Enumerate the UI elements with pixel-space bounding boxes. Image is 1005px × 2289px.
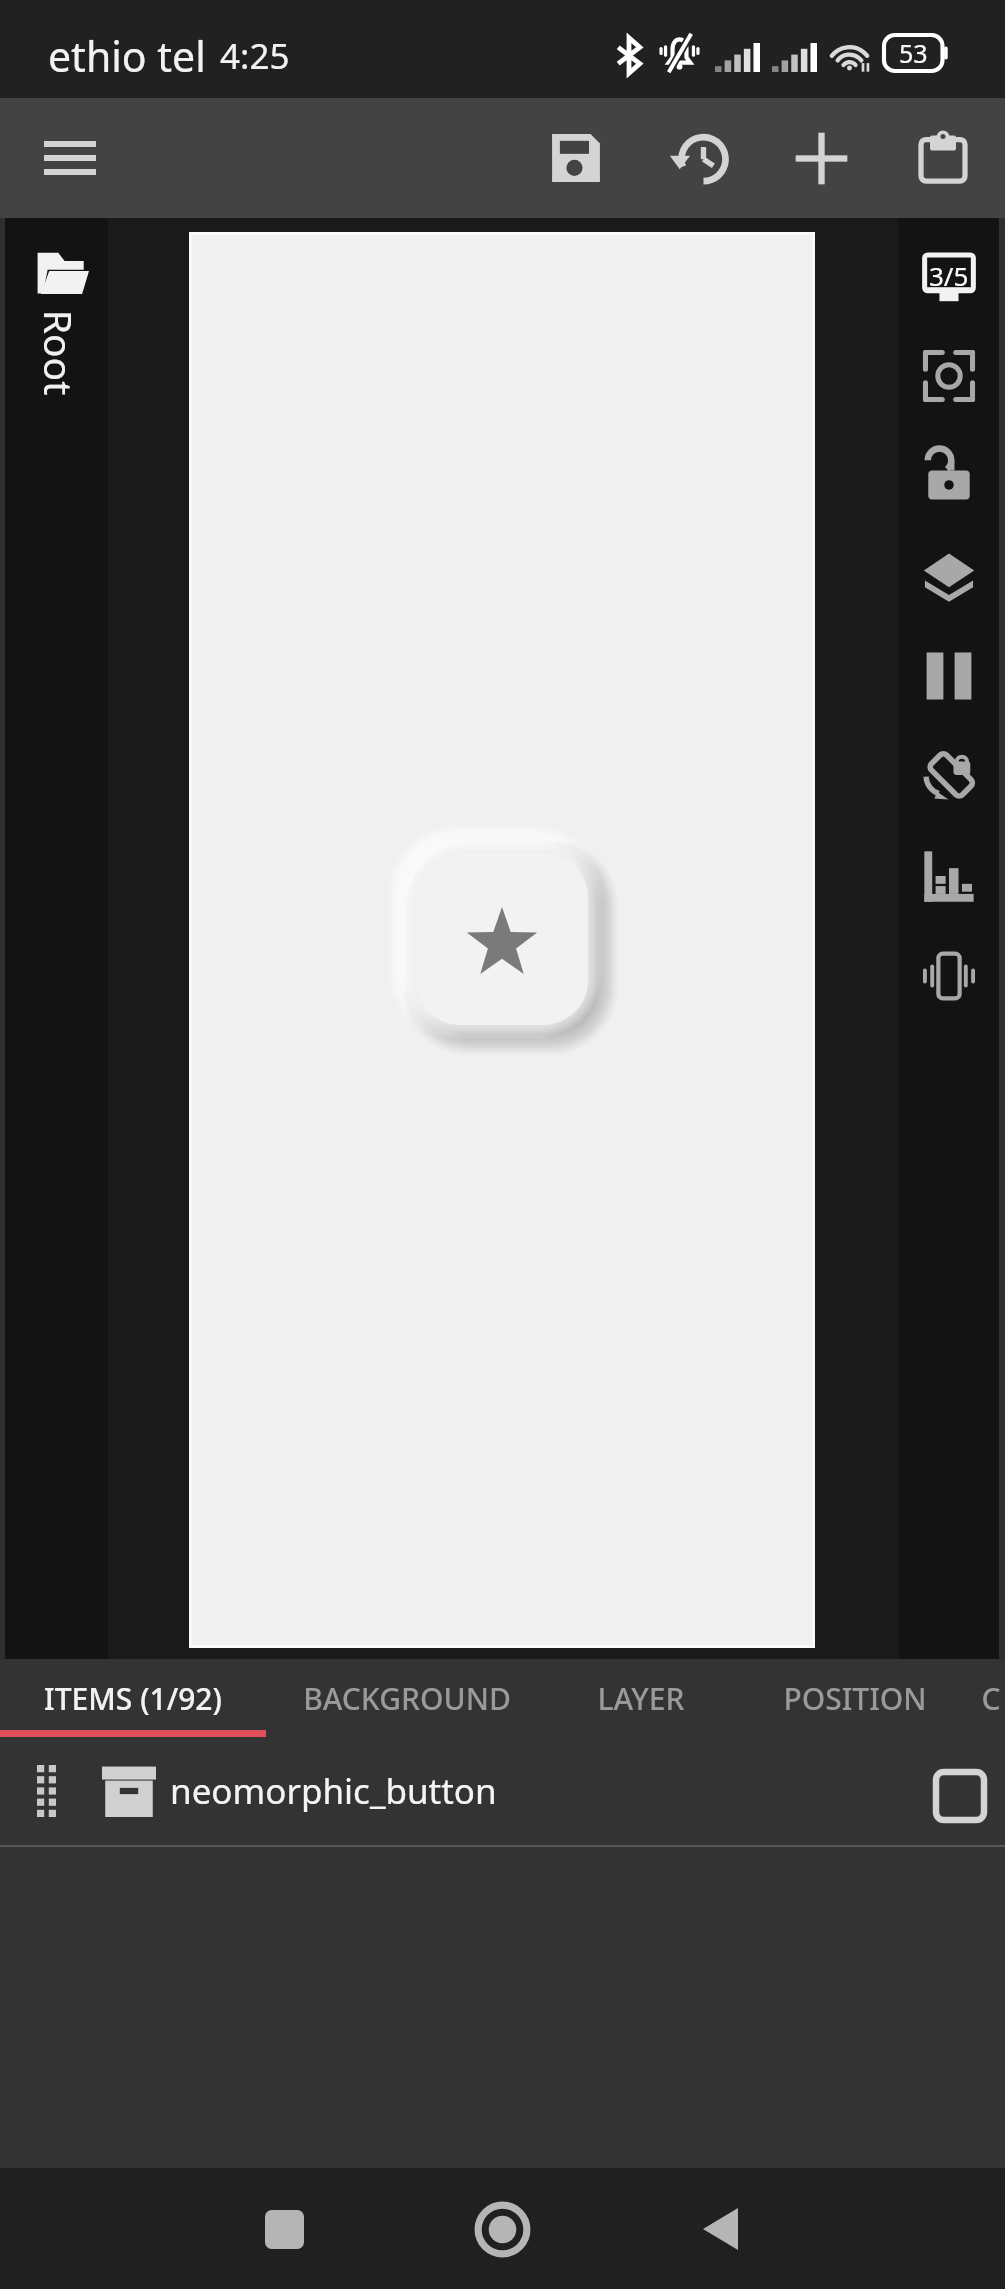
staticText: ITEMS (1/92) [44,1678,222,1719]
staticText: 53 [899,36,928,70]
button[interactable]: Root folder [22,232,102,312]
button[interactable]: Layers [899,526,999,626]
button[interactable]: Lock [899,426,999,526]
button[interactable]: Back [670,2179,770,2279]
staticText: 3/5 [929,258,969,293]
button[interactable]: Vibrate [899,926,999,1026]
button[interactable]: BACKGROUND [266,1659,548,1737]
button[interactable]: C [976,1659,1005,1737]
button[interactable]: Home [452,2179,552,2279]
button[interactable]: Page 3 of 5 [899,226,999,326]
button[interactable]: Pause [899,626,999,726]
button[interactable]: Rotation lock [899,726,999,826]
button[interactable]: History [650,108,750,208]
button[interactable]: POSITION [734,1659,976,1737]
staticText: 4:25 [220,32,290,80]
button[interactable]: Star button [416,853,588,1025]
button[interactable]: Menu [22,110,118,206]
staticText: BACKGROUND [303,1678,511,1719]
button[interactable]: LAYER [548,1659,734,1737]
staticText: LAYER [597,1678,685,1719]
staticText: ethio tel [48,28,206,84]
button[interactable]: Recent apps [234,2179,334,2279]
button[interactable]: Save [526,108,626,208]
button[interactable]: Stats [899,826,999,926]
staticText: neomorphic_button [170,1767,497,1815]
button[interactable]: Clipboard [893,108,993,208]
button[interactable]: Add [771,108,871,208]
button[interactable]: Select item [920,1756,1000,1836]
staticText: Root [32,272,85,432]
button[interactable]: neomorphic_button [0,1737,1005,1845]
staticText: POSITION [783,1678,927,1719]
button[interactable]: ITEMS (1/92) [0,1659,266,1737]
button[interactable]: Select [899,326,999,426]
staticText: C [981,1678,1001,1719]
